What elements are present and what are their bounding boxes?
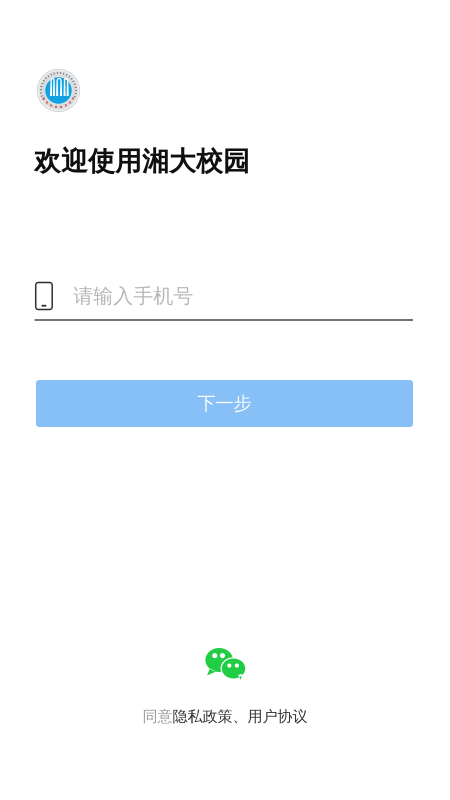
button[interactable]: 同意隐私政策、用户协议 <box>142 707 307 726</box>
staticText: 请输入手机号 <box>73 283 193 309</box>
staticText: 下一步 <box>197 392 251 415</box>
staticText: 同意 <box>142 707 172 726</box>
button[interactable]: Sign in with WeChat <box>204 646 245 680</box>
button[interactable]: Phone number field <box>36 282 414 309</box>
button[interactable]: 下一步 <box>36 380 413 427</box>
staticText: 欢迎使用湘大校园 <box>34 145 250 178</box>
staticText: 隐私政策、用户协议 <box>172 707 307 726</box>
